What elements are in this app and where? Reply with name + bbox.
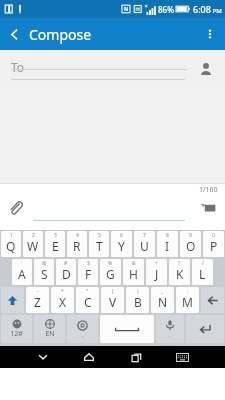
button[interactable]: Home (77, 346, 101, 368)
staticText: 0 (212, 232, 215, 239)
button[interactable]: 9 (180, 231, 201, 257)
staticText: 7 (143, 232, 146, 239)
staticText: G (106, 266, 115, 282)
staticText: X (59, 294, 67, 310)
staticText: C (84, 294, 92, 310)
staticText: % (108, 260, 113, 267)
button[interactable]: / (192, 259, 213, 285)
staticText: " (86, 288, 89, 295)
button[interactable]: Add recipient from contacts (193, 56, 219, 82)
button[interactable]: Enter (186, 315, 224, 343)
button[interactable]: ) (126, 287, 149, 313)
staticText: To (11, 59, 25, 75)
button[interactable]: % (100, 259, 121, 285)
staticText: PM (211, 7, 222, 15)
staticText: / (202, 260, 204, 267)
button[interactable]: 2 (23, 231, 43, 257)
button[interactable]: Back (31, 346, 55, 368)
button[interactable]: Symbols (1, 315, 32, 343)
button[interactable]: ( (101, 287, 124, 313)
staticText: H (129, 266, 138, 282)
button[interactable]: " (76, 287, 99, 313)
staticText: N (124, 6, 129, 13)
staticText: , (169, 331, 171, 339)
staticText: ' (21, 260, 23, 267)
button[interactable]: 7 (134, 231, 155, 257)
button[interactable]: @ (34, 259, 54, 285)
button[interactable]: : (176, 287, 199, 313)
staticText: K (176, 266, 184, 282)
button[interactable]: Backspace (201, 287, 224, 313)
staticText: 1/160 (199, 185, 218, 195)
button[interactable]: - (26, 287, 49, 313)
button[interactable]: Hide keyboard (170, 346, 194, 368)
staticText: @ (42, 260, 47, 267)
button[interactable]: * (51, 287, 74, 313)
button[interactable]: # (56, 259, 76, 285)
button[interactable]: 3 (45, 231, 65, 257)
button[interactable]: Space (100, 315, 154, 343)
staticText: : (187, 288, 189, 295)
staticText: ? (178, 260, 181, 267)
button[interactable]: Attach (2, 194, 28, 220)
staticText: & (132, 260, 136, 267)
button[interactable]: To (0, 50, 225, 88)
staticText: N (158, 294, 168, 310)
button[interactable]: Voice input (156, 315, 184, 343)
button[interactable]: Recent apps (124, 346, 148, 368)
button[interactable]: $ (78, 259, 98, 285)
button[interactable]: ' (12, 259, 32, 285)
staticText: M (182, 294, 193, 310)
button[interactable]: 1 (1, 231, 21, 257)
button[interactable]: Language (34, 315, 65, 343)
button[interactable]: Back (0, 20, 28, 48)
button[interactable]: Send (194, 193, 222, 221)
staticText: W (27, 238, 39, 254)
staticText: U (140, 238, 149, 254)
button[interactable]: & (123, 259, 144, 285)
staticText: $ (87, 260, 90, 267)
staticText: V (109, 294, 117, 310)
staticText: 86% (158, 4, 174, 15)
button[interactable]: + (146, 259, 167, 285)
staticText: 4 (76, 232, 79, 239)
staticText: E (52, 238, 59, 254)
staticText: L (199, 266, 206, 282)
staticText: A (18, 266, 26, 282)
staticText: + (155, 260, 158, 267)
button[interactable]: 4 (67, 231, 87, 257)
staticText: I (165, 238, 170, 254)
button[interactable]: 5 (89, 231, 109, 257)
staticText: ) (137, 288, 139, 295)
staticText: # (64, 260, 68, 267)
button[interactable]: 8 (157, 231, 178, 257)
staticText: P (210, 238, 218, 254)
staticText: 9 (189, 232, 192, 239)
button[interactable]: ? (169, 259, 190, 285)
staticText: 12# (10, 329, 23, 339)
staticText: 1 (10, 232, 13, 239)
staticText: 5 (98, 232, 101, 239)
staticText: Y (118, 238, 125, 254)
button[interactable]: Settings (67, 315, 98, 343)
staticText: 3 (54, 232, 57, 239)
staticText: ( (112, 288, 114, 295)
button[interactable]: 0 (203, 231, 224, 257)
staticText: R (73, 238, 81, 254)
staticText: T (96, 238, 103, 254)
staticText: _ (161, 288, 164, 295)
staticText: EN (45, 329, 55, 339)
staticText: B (134, 294, 142, 310)
staticText: Z (34, 294, 41, 310)
staticText: 6 (120, 232, 123, 239)
staticText: Compose (29, 25, 92, 44)
button[interactable]: _ (151, 287, 174, 313)
staticText: D (62, 266, 71, 282)
button[interactable]: Shift (1, 287, 24, 313)
staticText: Q (6, 238, 16, 254)
button[interactable]: 6 (111, 231, 132, 257)
button[interactable]: More options (195, 19, 225, 49)
staticText: * (61, 288, 64, 295)
staticText: 6:08 (193, 3, 211, 15)
